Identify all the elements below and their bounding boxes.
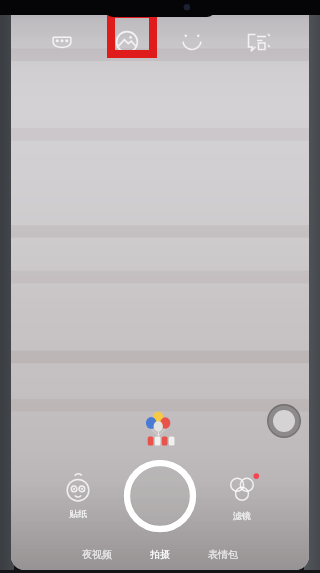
button[interactable]: Beauty filter bbox=[94, 18, 159, 66]
staticText: 夜视频 bbox=[82, 548, 112, 561]
staticText: 贴纸 bbox=[69, 508, 87, 519]
staticText: 表情包 bbox=[208, 548, 238, 561]
button[interactable]: 贴纸 bbox=[55, 470, 101, 523]
button[interactable]: Shutter bbox=[123, 459, 197, 533]
staticText: 拍摄 bbox=[150, 548, 170, 561]
button[interactable]: Smile shutter bbox=[159, 18, 225, 66]
button[interactable]: 夜视频 bbox=[76, 545, 118, 564]
button[interactable]: More effects bbox=[29, 18, 94, 66]
staticText: 滤镜 bbox=[233, 510, 251, 521]
button[interactable]: 滤镜 bbox=[217, 468, 267, 525]
button[interactable]: Switch camera bbox=[267, 404, 301, 438]
button[interactable]: 拍摄 bbox=[144, 545, 176, 564]
button[interactable]: Settings bbox=[225, 18, 291, 66]
button[interactable]: 表情包 bbox=[202, 545, 244, 564]
